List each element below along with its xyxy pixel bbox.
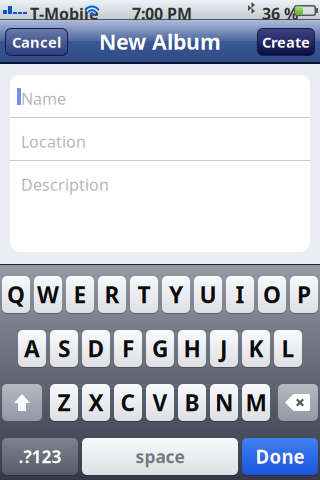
button[interactable]: P: [290, 276, 318, 313]
button[interactable]: Create: [257, 28, 315, 56]
staticText: T: [137, 279, 150, 309]
staticText: Z: [57, 387, 70, 417]
button[interactable]: G: [146, 330, 174, 367]
staticText: Q: [7, 279, 25, 309]
staticText: New Album: [99, 27, 221, 56]
staticText: D: [87, 333, 104, 363]
staticText: S: [58, 333, 70, 363]
staticText: H: [183, 333, 200, 363]
staticText: M: [245, 387, 266, 417]
button[interactable]: W: [34, 276, 62, 313]
button[interactable]: R: [98, 276, 126, 313]
staticText: T-Mobile: [30, 3, 99, 24]
button[interactable]: Cancel: [5, 28, 68, 56]
button[interactable]: Shift: [2, 384, 42, 421]
staticText: J: [220, 333, 228, 363]
staticText: .?123: [18, 445, 61, 468]
button[interactable]: Z: [50, 384, 78, 421]
staticText: Done: [255, 444, 304, 469]
button[interactable]: A: [18, 330, 46, 367]
staticText: K: [248, 333, 263, 363]
button[interactable]: D: [82, 330, 110, 367]
button[interactable]: U: [194, 276, 222, 313]
button[interactable]: E: [66, 276, 94, 313]
button[interactable]: T: [130, 276, 158, 313]
staticText: A: [24, 333, 40, 363]
button[interactable]: space: [82, 438, 238, 475]
staticText: 36 %: [262, 3, 298, 24]
button[interactable]: I: [226, 276, 254, 313]
staticText: B: [184, 387, 199, 417]
button[interactable]: F: [114, 330, 142, 367]
staticText: F: [122, 333, 134, 363]
staticText: Create: [262, 32, 310, 52]
staticText: 7:00 PM: [132, 3, 192, 24]
staticText: R: [104, 279, 119, 309]
staticText: I: [235, 279, 244, 309]
button[interactable]: V: [146, 384, 174, 421]
staticText: P: [297, 279, 311, 309]
staticText: Y: [169, 279, 183, 309]
staticText: Description: [21, 174, 109, 195]
staticText: U: [199, 279, 216, 309]
staticText: E: [73, 279, 86, 309]
button[interactable]: C: [114, 384, 142, 421]
button[interactable]: L: [274, 330, 302, 367]
staticText: W: [37, 279, 59, 309]
button[interactable]: M: [242, 384, 270, 421]
staticText: X: [88, 387, 103, 417]
button[interactable]: H: [178, 330, 206, 367]
button[interactable]: S: [50, 330, 78, 367]
button[interactable]: X: [82, 384, 110, 421]
staticText: O: [263, 279, 281, 309]
staticText: N: [215, 387, 233, 417]
button[interactable]: Done: [242, 438, 318, 475]
button[interactable]: Delete: [278, 384, 318, 421]
button[interactable]: J: [210, 330, 238, 367]
button[interactable]: N: [210, 384, 238, 421]
staticText: C: [120, 387, 135, 417]
staticText: G: [152, 333, 168, 363]
staticText: Cancel: [12, 32, 61, 52]
staticText: V: [152, 387, 167, 417]
staticText: Location: [21, 131, 86, 152]
button[interactable]: .?123: [2, 438, 78, 475]
button[interactable]: O: [258, 276, 286, 313]
staticText: L: [281, 333, 294, 363]
button[interactable]: Y: [162, 276, 190, 313]
button[interactable]: K: [242, 330, 270, 367]
button[interactable]: B: [178, 384, 206, 421]
staticText: space: [135, 445, 184, 468]
button[interactable]: Q: [2, 276, 30, 313]
staticText: Name: [21, 88, 66, 109]
